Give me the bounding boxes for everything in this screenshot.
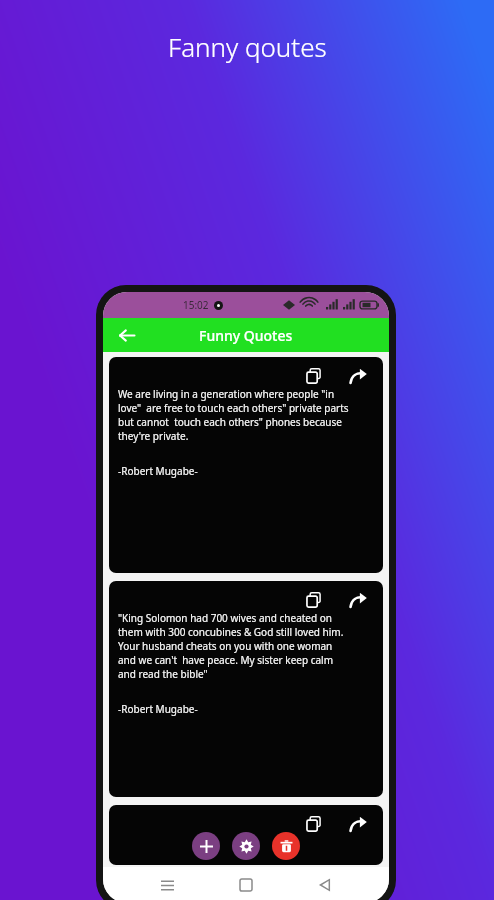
button[interactable]: Copy <box>109 805 383 865</box>
staticText: Funny Quotes <box>199 326 293 345</box>
button[interactable]: Copy <box>303 365 325 387</box>
button[interactable]: Add <box>192 832 220 860</box>
button[interactable]: Back <box>310 870 340 900</box>
staticText: but cannot touch each others" phones bec… <box>118 415 342 429</box>
button[interactable]: Copy <box>303 813 325 835</box>
staticText: love" are free to touch each others" pri… <box>118 401 349 415</box>
staticText: 15:02 <box>183 298 209 312</box>
button[interactable]: Share <box>347 365 369 387</box>
staticText: Your husband cheats on you with one woma… <box>118 639 333 653</box>
button[interactable]: Copy <box>109 581 383 797</box>
staticText: and we can't have peace. My sister keep … <box>118 653 334 667</box>
button[interactable]: Share <box>347 813 369 835</box>
staticText: -Robert Mugabe- <box>118 702 198 716</box>
staticText: We are living in a generation where peop… <box>118 387 335 401</box>
button[interactable]: Settings <box>232 832 260 860</box>
staticText: them with 300 concubines & God still lov… <box>118 625 344 639</box>
button[interactable]: Recents <box>152 870 182 900</box>
button[interactable]: Copy <box>303 589 325 611</box>
button[interactable]: Back <box>111 320 141 350</box>
staticText: Fanny qoutes <box>168 29 327 64</box>
button[interactable]: Copy <box>109 357 383 573</box>
staticText: "King Solomon had 700 wives and cheated … <box>118 611 332 625</box>
staticText: and read the bible" <box>118 667 208 681</box>
button[interactable]: Delete <box>272 832 300 860</box>
staticText: -Robert Mugabe- <box>118 464 198 478</box>
staticText: they're private. <box>118 429 189 443</box>
button[interactable]: Home <box>231 870 261 900</box>
button[interactable]: Share <box>347 589 369 611</box>
